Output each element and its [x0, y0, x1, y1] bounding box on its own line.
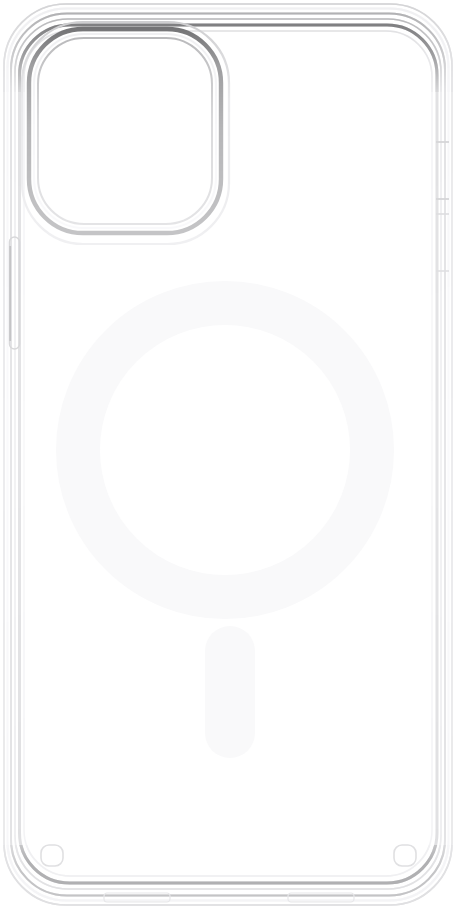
- button[interactable]: Transparent phone case product photo: [0, 0, 457, 914]
